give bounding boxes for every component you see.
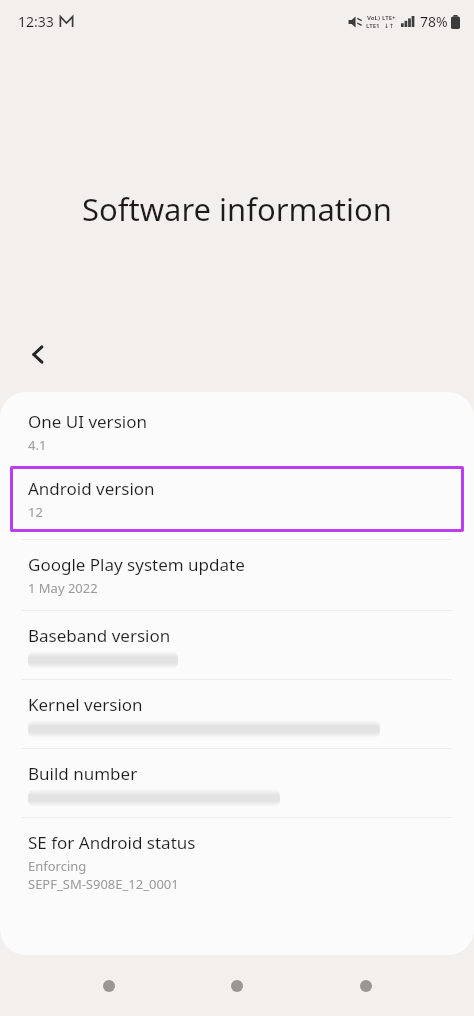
button[interactable]: One UI version — [0, 400, 474, 466]
staticText: LTE1 — [366, 22, 380, 30]
staticText: ↓↑ — [384, 22, 395, 29]
button[interactable]: Google Play system update — [0, 540, 474, 610]
staticText: Baseband version — [28, 624, 171, 647]
staticText: 78% — [420, 12, 448, 31]
staticText: Software information — [82, 188, 392, 230]
button[interactable]: Back — [18, 334, 58, 374]
button[interactable]: Home — [217, 966, 257, 1006]
staticText: LTE+ — [382, 14, 396, 22]
staticText: One UI version — [28, 410, 147, 433]
staticText: SE for Android status — [28, 831, 196, 854]
staticText: 12 — [28, 503, 43, 521]
staticText: Google Play system update — [28, 553, 245, 576]
staticText: SEPF_SM-S908E_12_0001 — [28, 875, 179, 893]
button[interactable]: Build number — [0, 749, 474, 817]
staticText: Enforcing — [28, 857, 87, 875]
button[interactable]: Recents — [89, 966, 129, 1006]
staticText: 1 May 2022 — [28, 579, 98, 597]
staticText: Build number — [28, 762, 138, 785]
staticText: 4.1 — [28, 436, 47, 454]
button[interactable]: Android version — [10, 466, 464, 532]
button[interactable]: SE for Android status — [0, 818, 474, 906]
button[interactable]: Kernel version — [0, 680, 474, 748]
button[interactable]: Baseband version — [0, 611, 474, 679]
staticText: VoL) — [367, 14, 380, 22]
staticText: Android version — [28, 477, 155, 500]
staticText: Kernel version — [28, 693, 143, 716]
button[interactable]: Back — [346, 966, 386, 1006]
staticText: 12:33 — [18, 12, 54, 31]
